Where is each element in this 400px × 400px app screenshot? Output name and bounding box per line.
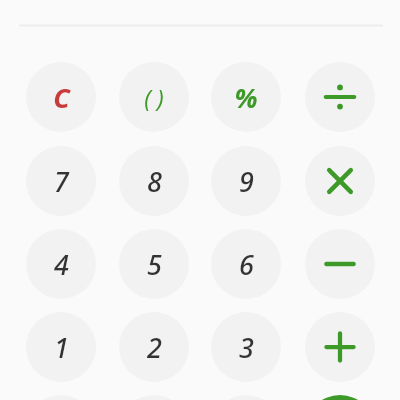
staticText: ( ) [144,82,164,113]
button[interactable]: Zero [26,395,96,400]
button[interactable]: Six [211,229,281,299]
staticText: 4 [54,246,69,283]
button[interactable]: Divide [305,62,375,132]
button[interactable]: Multiply [305,146,375,216]
button[interactable]: Three [211,312,281,382]
button[interactable]: Equals [305,395,375,400]
button[interactable]: Plus [305,312,375,382]
button[interactable]: Eight [119,146,189,216]
button[interactable]: Nine [211,146,281,216]
staticText: 2 [147,329,162,366]
staticText: 3 [239,329,254,366]
button[interactable]: Backspace [211,395,281,400]
button[interactable]: Clear [26,62,96,132]
button[interactable]: One [26,312,96,382]
staticText: 8 [147,163,162,200]
staticText: 1 [54,329,69,366]
button[interactable]: Minus [305,229,375,299]
button[interactable]: Four [26,229,96,299]
button[interactable]: Five [119,229,189,299]
staticText: % [234,79,258,116]
staticText: C [53,79,70,116]
staticText: 6 [239,246,254,283]
button[interactable]: Percent [211,62,281,132]
staticText: 7 [54,163,69,200]
button[interactable]: Two [119,312,189,382]
button[interactable]: Seven [26,146,96,216]
staticText: 9 [239,163,254,200]
button[interactable]: Parentheses [119,62,189,132]
staticText: 5 [147,246,162,283]
button[interactable]: Decimal point [119,395,189,400]
